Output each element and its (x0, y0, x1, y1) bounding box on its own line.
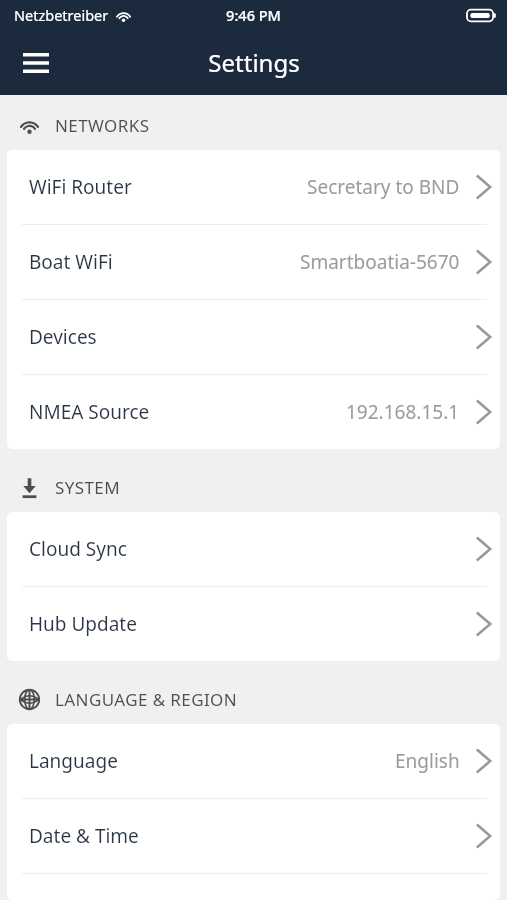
staticText: Secretary to BND (307, 174, 460, 200)
staticText: Netzbetreiber (14, 5, 109, 25)
staticText: LANGUAGE & REGION (55, 688, 238, 711)
button[interactable]: NMEA Source (7, 375, 500, 449)
staticText: 9:46 PM (226, 5, 281, 25)
button[interactable]: Open navigation menu (10, 41, 62, 85)
button[interactable]: Cloud Sync (7, 512, 500, 586)
button[interactable]: Language (7, 724, 500, 798)
staticText: Cloud Sync (29, 536, 127, 562)
staticText: Boat WiFi (29, 249, 113, 275)
button[interactable]: Date & Time (7, 799, 500, 873)
staticText: WiFi Router (29, 174, 132, 200)
button[interactable]: Devices (7, 300, 500, 374)
staticText: Hub Update (29, 611, 137, 637)
staticText: English (395, 748, 460, 774)
staticText: Devices (29, 324, 97, 350)
staticText: Date & Time (29, 823, 139, 849)
button[interactable]: Boat WiFi (7, 225, 500, 299)
staticText: 192.168.15.1 (346, 399, 460, 425)
staticText: Smartboatia-5670 (300, 249, 460, 275)
button[interactable]: Hub Update (7, 587, 500, 661)
staticText: Language (29, 748, 118, 774)
button[interactable]: WiFi Router (7, 150, 500, 224)
staticText: Settings (208, 46, 300, 79)
staticText: SYSTEM (55, 476, 121, 499)
staticText: NMEA Source (29, 399, 150, 425)
staticText: NETWORKS (55, 114, 150, 137)
